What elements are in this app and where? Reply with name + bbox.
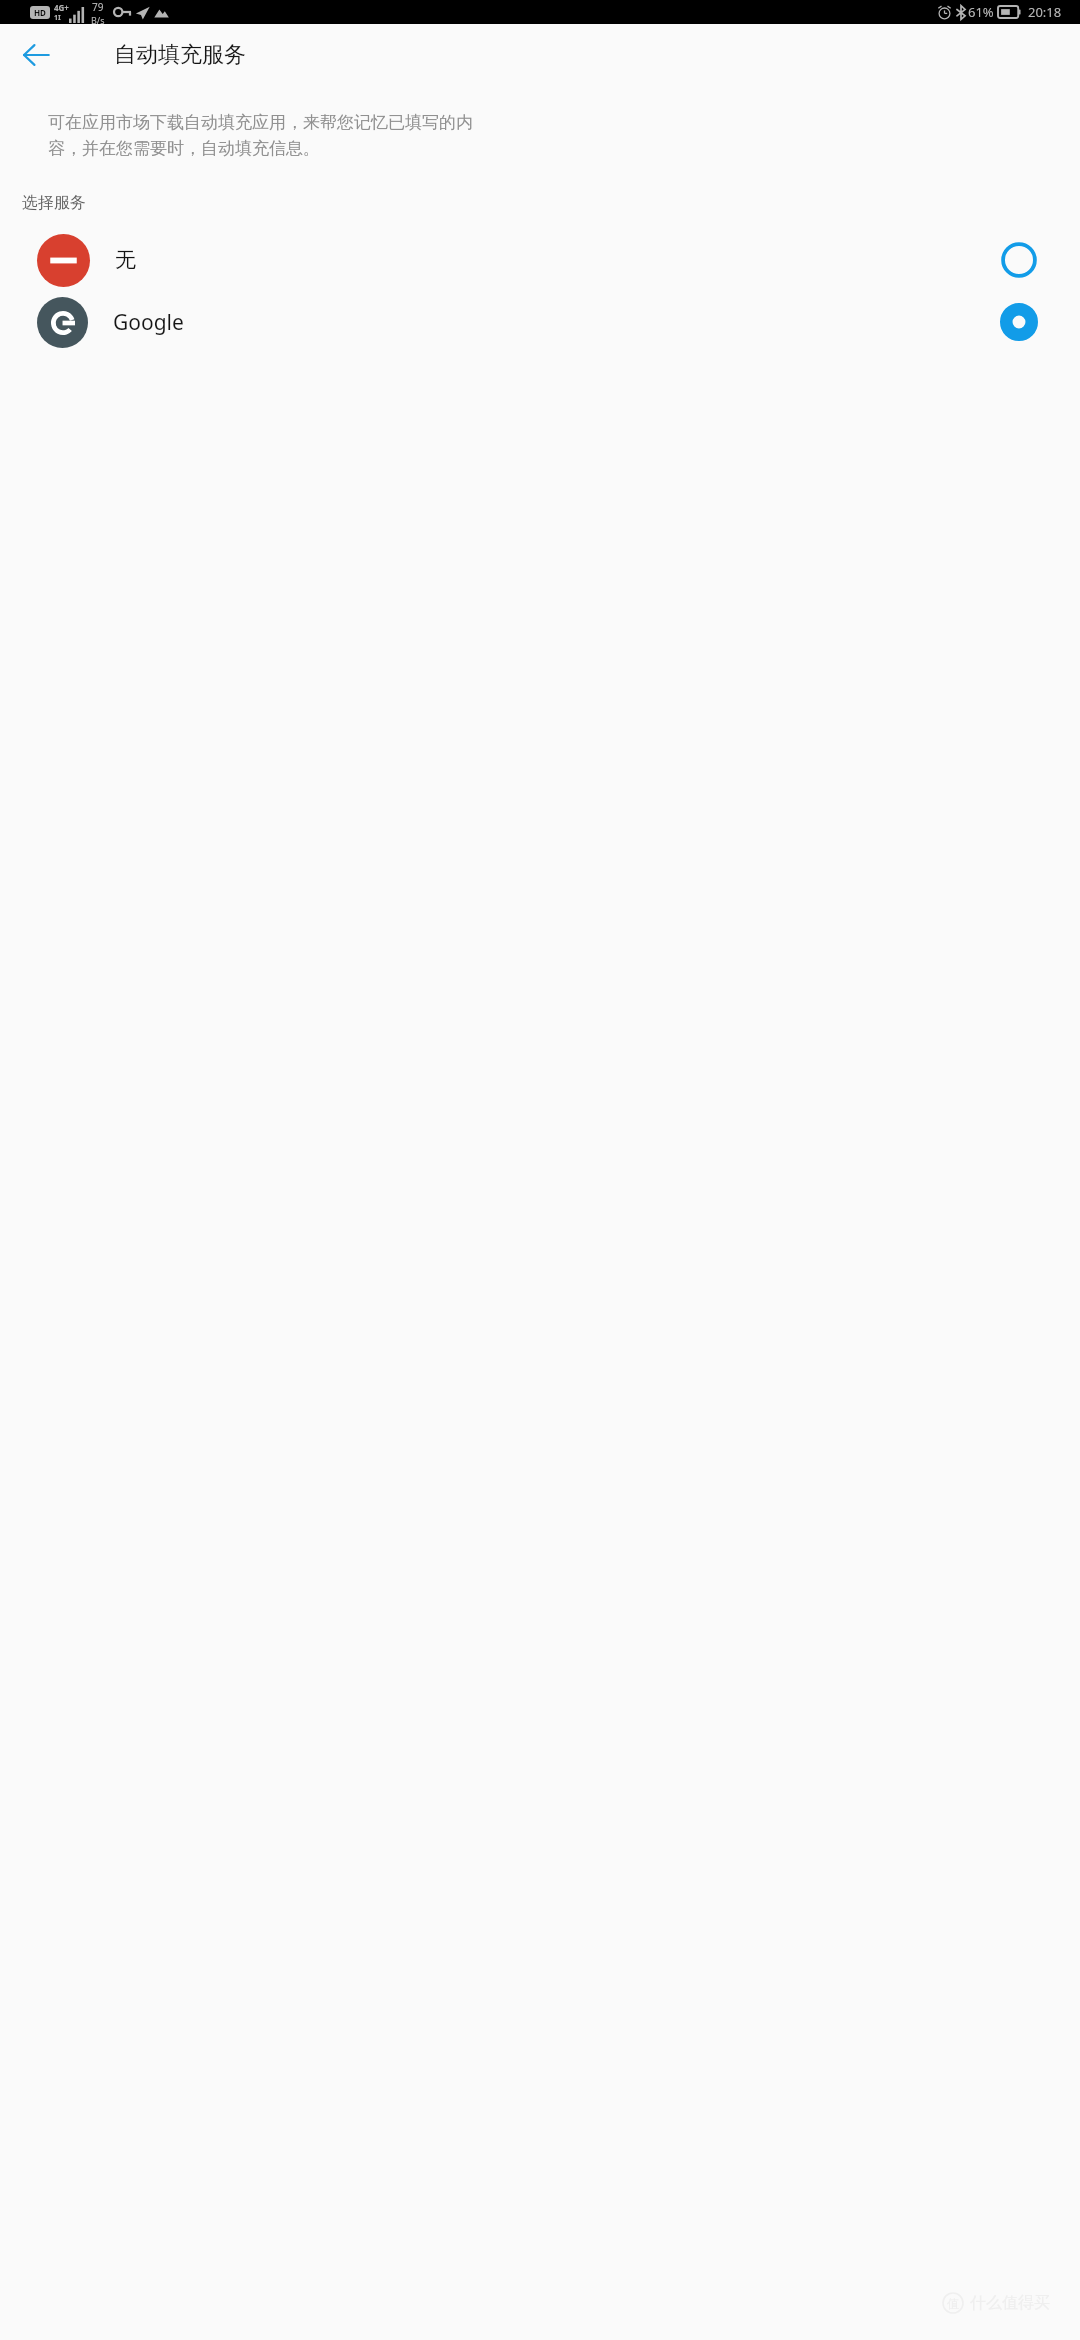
button[interactable]: Google: [0, 291, 1080, 353]
staticText: 4G+: [54, 2, 69, 13]
staticText: HD: [34, 7, 46, 18]
staticText: 无: [115, 247, 136, 273]
staticText: Google: [113, 308, 184, 337]
button[interactable]: Not selected: [995, 236, 1043, 284]
staticText: 值: [947, 2296, 959, 2311]
button[interactable]: Selected: [995, 298, 1043, 346]
staticText: 1I: [54, 13, 61, 23]
staticText: B/s: [91, 14, 105, 24]
staticText: 什么值得买: [970, 2293, 1050, 2313]
staticText: 61%: [968, 3, 994, 21]
staticText: 79: [92, 0, 104, 14]
staticText: 选择服务: [22, 193, 86, 213]
button[interactable]: Back: [8, 27, 64, 83]
staticText: 20:18: [1028, 3, 1062, 21]
staticText: 可在应用市场下载自动填充应用，来帮您记忆已填写的内 容，并在您需要时，自动填充信…: [48, 112, 473, 159]
button[interactable]: 无: [0, 229, 1080, 291]
staticText: 自动填充服务: [114, 41, 246, 69]
